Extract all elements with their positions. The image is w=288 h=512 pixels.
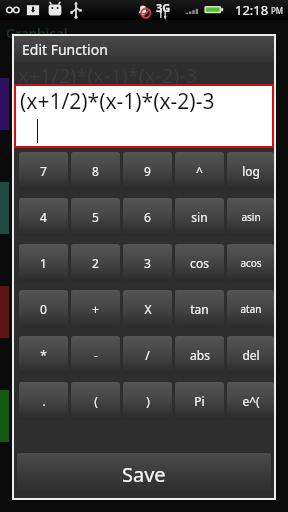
staticText: abs (190, 347, 210, 363)
staticText: tan (190, 301, 209, 317)
button[interactable]: . (19, 382, 68, 420)
button[interactable]: * (19, 336, 68, 374)
staticText: sin (191, 209, 208, 225)
staticText: ( (94, 393, 98, 409)
button[interactable]: 2 (71, 244, 120, 282)
staticText: . (42, 393, 46, 409)
button[interactable]: Pi (175, 382, 224, 420)
button[interactable]: ) (123, 382, 172, 420)
staticText: atan (240, 302, 262, 316)
staticText: x+1/2)*(x-1)*(x-2)-3 (18, 62, 198, 84)
staticText: Pi (194, 393, 205, 409)
staticText: ) (146, 393, 150, 409)
staticText: X (144, 301, 152, 317)
staticText: 3 (144, 255, 151, 271)
button[interactable]: 4 (19, 198, 68, 236)
button[interactable]: X (123, 290, 172, 328)
button[interactable]: 3 (123, 244, 172, 282)
button[interactable]: del (227, 336, 274, 374)
button[interactable]: 5 (71, 198, 120, 236)
staticText: / (145, 347, 150, 363)
button[interactable]: tan (175, 290, 224, 328)
staticText: ^ (196, 163, 203, 179)
button[interactable]: acos (227, 244, 274, 282)
staticText: 0 (40, 301, 47, 317)
button[interactable]: atan (227, 290, 274, 328)
button[interactable]: ( (71, 382, 120, 420)
staticText: + (92, 301, 99, 317)
staticText: e^( (242, 393, 260, 409)
staticText: log (242, 163, 260, 179)
staticText: 3G (156, 0, 171, 15)
staticText: asin (241, 210, 261, 224)
button[interactable]: 6 (123, 198, 172, 236)
button[interactable]: asin (227, 198, 274, 236)
button[interactable]: sin (175, 198, 224, 236)
staticText: * (40, 347, 47, 363)
button[interactable]: 7 (19, 152, 68, 190)
staticText: del (242, 347, 260, 363)
staticText: Save (122, 461, 166, 488)
staticText: PM (271, 5, 284, 16)
button[interactable]: - (71, 336, 120, 374)
button[interactable]: 9 (123, 152, 172, 190)
button[interactable]: 0 (19, 290, 68, 328)
staticText: 2 (92, 255, 99, 271)
staticText: Graphical (6, 24, 68, 42)
button[interactable]: cos (175, 244, 224, 282)
staticText: 4 (40, 209, 47, 225)
staticText: (x+1/2)*(x-1)*(x-2)-3 (20, 87, 215, 116)
button[interactable]: Save (17, 453, 271, 495)
button[interactable]: 1 (19, 244, 68, 282)
button[interactable]: / (123, 336, 172, 374)
staticText: - (94, 347, 98, 363)
button[interactable]: e^( (227, 382, 274, 420)
button[interactable]: + (71, 290, 120, 328)
staticText: 1 (40, 255, 47, 271)
staticText: 8 (92, 163, 99, 179)
staticText: 6 (144, 209, 151, 225)
staticText: 12:18 (235, 1, 269, 19)
button[interactable]: log (227, 152, 274, 190)
staticText: Edit Function (22, 40, 108, 59)
staticText: 9 (144, 163, 151, 179)
staticText: cos (190, 255, 209, 271)
staticText: 7 (40, 163, 47, 179)
button[interactable]: 8 (71, 152, 120, 190)
staticText: 5 (92, 209, 99, 225)
staticText: acos (240, 256, 262, 270)
button[interactable]: ^ (175, 152, 224, 190)
button[interactable]: abs (175, 336, 224, 374)
